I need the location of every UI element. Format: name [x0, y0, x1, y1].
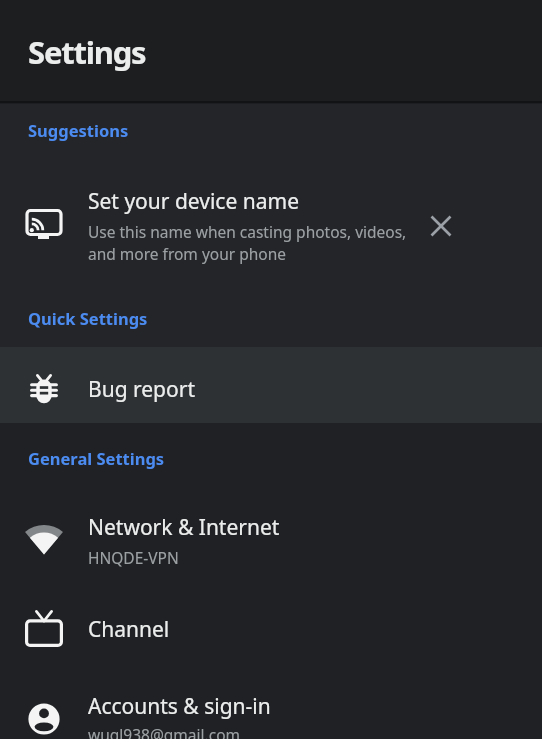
staticText: Set your device name	[88, 187, 299, 216]
staticText: HNQDE-VPN	[88, 547, 179, 568]
staticText: Network & Internet	[88, 513, 280, 542]
staticText: General Settings	[28, 447, 165, 469]
staticText: Settings	[28, 31, 146, 73]
staticText: Bug report	[88, 375, 195, 404]
staticText: and more from your phone	[88, 243, 286, 264]
staticText: Use this name when casting photos, video…	[88, 221, 407, 242]
staticText: Quick Settings	[28, 307, 148, 329]
staticText: Accounts & sign-in	[88, 692, 271, 721]
staticText: Suggestions	[28, 119, 129, 141]
staticText: wugl938@gmail.com	[88, 724, 241, 739]
staticText: Channel	[88, 615, 170, 644]
